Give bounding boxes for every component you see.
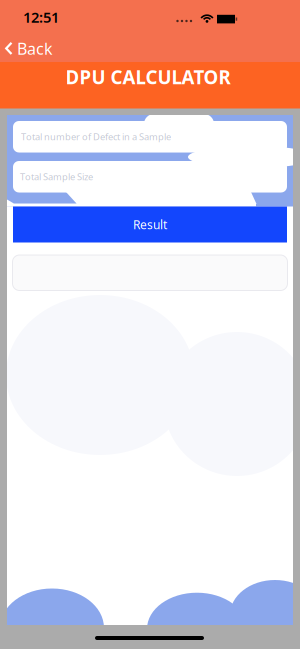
button[interactable]: Back — [4, 38, 54, 58]
staticText: Total number of Defect in a Sample — [21, 131, 171, 143]
button[interactable]: Result — [13, 206, 287, 242]
staticText: Back — [17, 38, 53, 59]
staticText: Total Sample Size — [20, 171, 93, 183]
staticText: DPU CALCULATOR — [65, 65, 230, 89]
button[interactable]: Total number of Defect in a Sample — [13, 121, 287, 152]
staticText: 12:51 — [23, 7, 59, 27]
button[interactable]: Total Sample Size — [13, 161, 287, 192]
staticText: Result — [133, 216, 167, 232]
